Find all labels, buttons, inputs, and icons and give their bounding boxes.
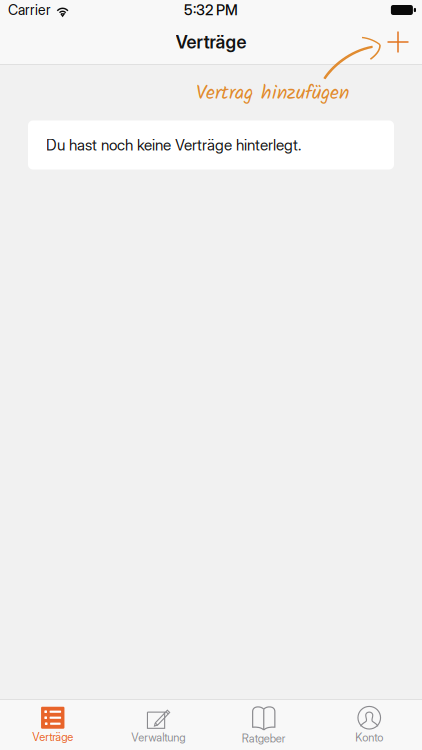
staticText: Verträge xyxy=(32,730,73,744)
staticText: Ratgeber xyxy=(242,732,286,745)
staticText: Konto xyxy=(355,731,383,744)
staticText: Verträge xyxy=(175,31,246,53)
staticText: 5:32 PM xyxy=(184,1,238,19)
button[interactable]: Vertrag hinzufügen xyxy=(376,20,420,64)
button[interactable]: Verträge xyxy=(0,700,105,750)
staticText: Carrier xyxy=(8,1,51,18)
button[interactable]: Konto xyxy=(316,700,422,750)
button[interactable]: Ratgeber xyxy=(211,700,316,750)
staticText: Verwaltung xyxy=(131,731,185,744)
button[interactable]: Verwaltung xyxy=(105,700,211,750)
staticText: Du hast noch keine Verträge hinterlegt. xyxy=(46,136,301,154)
staticText: Vertrag hinzufügen xyxy=(196,78,349,109)
